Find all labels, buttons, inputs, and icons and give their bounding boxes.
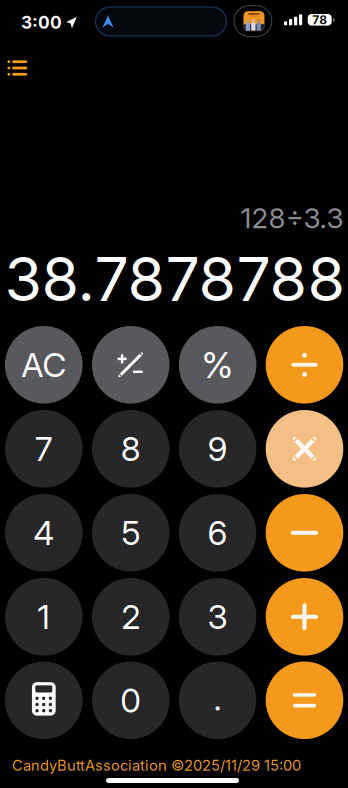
button[interactable]: % xyxy=(179,326,256,404)
button[interactable]: 2 xyxy=(92,578,169,656)
staticText: 5 xyxy=(121,513,140,553)
button[interactable]: 8 xyxy=(92,410,169,488)
button[interactable] xyxy=(266,578,343,656)
staticText: CandyButtAssociation ©2025/11/29 15:00 xyxy=(12,756,301,774)
staticText: 38.7878788 xyxy=(4,242,345,316)
staticText: 8 xyxy=(121,429,141,469)
staticText: 3:00 xyxy=(21,12,62,33)
staticText: 0 xyxy=(120,680,141,720)
staticText: 1 xyxy=(37,597,50,637)
button[interactable] xyxy=(266,326,343,404)
button[interactable]: 7 xyxy=(5,410,83,488)
staticText: 2 xyxy=(121,597,140,637)
button[interactable]: 1 xyxy=(5,578,83,656)
staticText: 9 xyxy=(208,429,228,469)
staticText: 7 xyxy=(35,429,53,469)
button[interactable]: 6 xyxy=(179,494,256,572)
staticText: . xyxy=(214,678,222,718)
staticText: 3 xyxy=(208,597,228,637)
button[interactable]: . xyxy=(179,661,256,739)
button[interactable]: 4 xyxy=(5,494,83,572)
button[interactable] xyxy=(266,494,343,572)
button[interactable]: AC xyxy=(5,326,83,404)
staticText: % xyxy=(202,343,234,387)
staticText: 4 xyxy=(33,513,54,553)
button[interactable] xyxy=(266,661,343,739)
button[interactable]: 5 xyxy=(92,494,169,572)
staticText: 6 xyxy=(208,513,228,553)
staticText: 78 xyxy=(312,12,327,27)
button[interactable]: 9 xyxy=(179,410,256,488)
button[interactable] xyxy=(5,661,83,739)
button[interactable]: History xyxy=(0,52,35,84)
button[interactable]: 0 xyxy=(92,661,169,739)
staticText: AC xyxy=(21,345,66,385)
button[interactable] xyxy=(92,326,169,404)
button[interactable]: 3 xyxy=(179,578,256,656)
staticText: 128÷3.3 xyxy=(240,201,343,235)
button[interactable] xyxy=(266,410,343,488)
